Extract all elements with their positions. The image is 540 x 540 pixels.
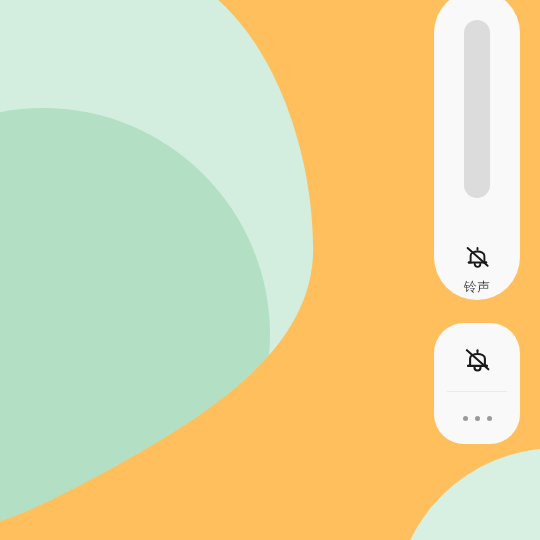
button[interactable]: More options [434, 393, 520, 444]
button[interactable]: Volume slider [434, 0, 520, 300]
button[interactable]: Ringer off [462, 242, 492, 272]
button[interactable]: Mute [460, 343, 494, 377]
staticText: 铃声 [464, 278, 490, 294]
